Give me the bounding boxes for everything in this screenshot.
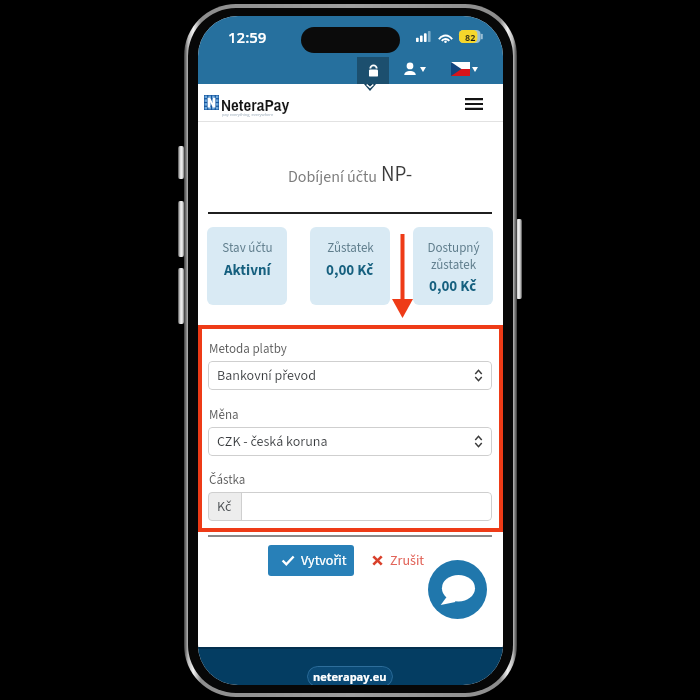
button[interactable]: Menu — [460, 92, 488, 116]
button[interactable]: Bankovní převod — [208, 361, 492, 390]
staticText: Zůstatek — [327, 239, 374, 258]
button[interactable]: Zůstatek — [310, 227, 390, 305]
button[interactable]: neterapay.eu — [307, 666, 393, 685]
button[interactable]: Chat — [428, 560, 487, 619]
staticText: 12:59 — [228, 27, 267, 47]
staticText: NP- — [381, 159, 413, 189]
staticText: CZK - česká koruna — [217, 432, 328, 452]
staticText: Dostupný zůstatek — [427, 239, 480, 274]
button[interactable]: Language — [451, 62, 478, 76]
button[interactable]: Vytvořit — [268, 545, 354, 576]
staticText: pay everything, everywhere — [222, 112, 274, 117]
staticText: 0,00 Kč — [326, 260, 374, 281]
staticText: Vytvořit — [301, 551, 347, 571]
button[interactable]: Dostupný zůstatek — [413, 227, 493, 305]
staticText: Dobíjení účtu — [288, 166, 381, 189]
button[interactable]: Zrušit — [372, 545, 425, 576]
staticText: Bankovní převod — [217, 366, 316, 386]
button[interactable]: NeteraPay home — [204, 95, 290, 123]
button[interactable]: Secure connection — [357, 57, 389, 84]
staticText: 82 — [465, 31, 476, 43]
staticText: Kč — [217, 497, 232, 517]
staticText: Metoda platby — [209, 340, 287, 359]
staticText: 0,00 Kč — [429, 276, 477, 297]
staticText: Stav účtu — [222, 239, 273, 258]
button[interactable]: Stav účtu — [207, 227, 287, 305]
button[interactable]: CZK - česká koruna — [208, 427, 492, 456]
button[interactable]: Account — [403, 62, 426, 76]
staticText: Zrušit — [390, 551, 425, 571]
staticText: Aktivní — [224, 260, 271, 281]
button[interactable]: Kč — [208, 492, 492, 521]
staticText: Částka — [209, 471, 246, 490]
staticText: NeteraPay — [221, 93, 290, 116]
staticText: Měna — [209, 406, 239, 425]
staticText: neterapay.eu — [313, 669, 387, 684]
